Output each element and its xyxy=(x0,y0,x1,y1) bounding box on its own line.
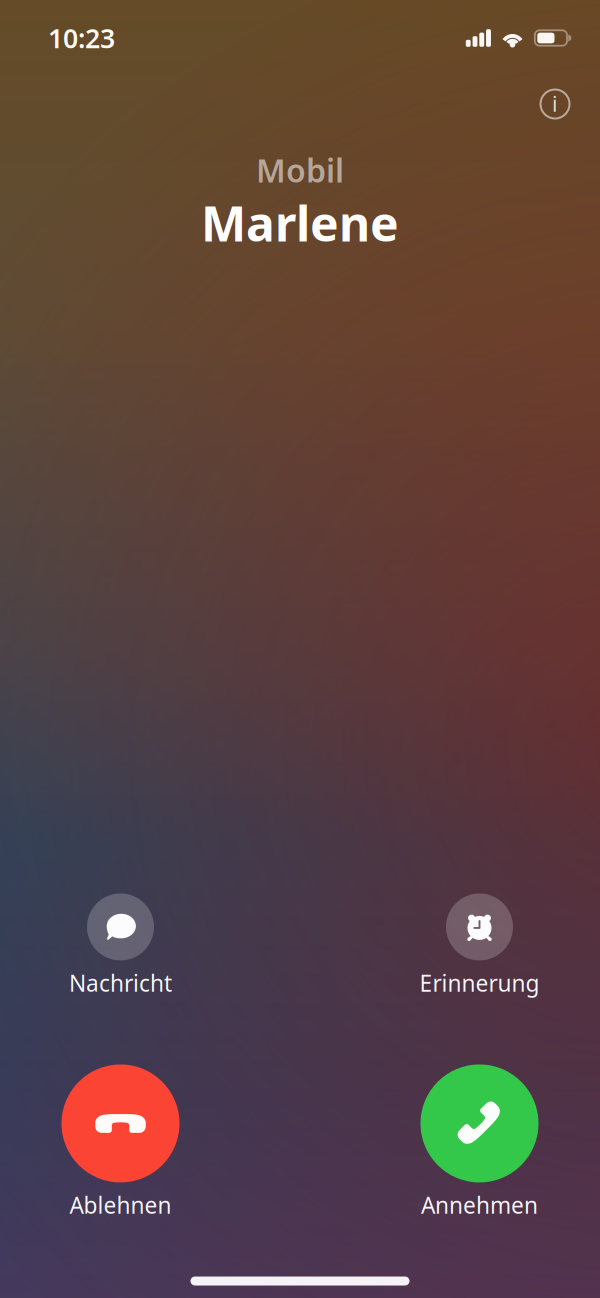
button[interactable]: Info xyxy=(527,76,583,132)
staticText: Annehmen xyxy=(421,1190,538,1220)
staticText: Ablehnen xyxy=(69,1190,171,1220)
staticText: Marlene xyxy=(201,191,399,255)
button[interactable]: Ablehnen xyxy=(5,1064,235,1222)
staticText: Erinnerung xyxy=(419,968,539,998)
button[interactable]: Erinnerung xyxy=(364,893,594,1000)
button[interactable]: Nachricht xyxy=(5,893,235,1000)
staticText: Nachricht xyxy=(69,968,172,998)
staticText: Mobil xyxy=(256,149,344,191)
button[interactable]: Annehmen xyxy=(364,1064,594,1222)
staticText: i xyxy=(552,89,558,118)
staticText: 10:23 xyxy=(48,20,115,56)
